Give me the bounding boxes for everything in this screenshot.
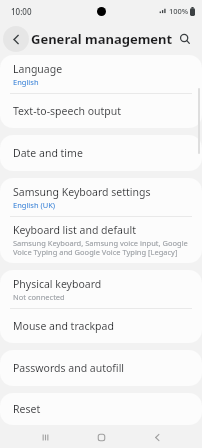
button[interactable]: Home: [90, 426, 112, 448]
button[interactable]: Recent apps: [34, 426, 56, 448]
staticText: Keyboard list and default: [13, 223, 136, 237]
staticText: English: [13, 77, 39, 87]
staticText: Physical keyboard: [13, 277, 102, 291]
button[interactable]: Language: [0, 55, 202, 93]
staticText: 10:00: [11, 6, 32, 17]
staticText: General management: [31, 30, 173, 48]
button[interactable]: Search: [172, 26, 198, 52]
staticText: Text-to-speech output: [13, 104, 122, 118]
button[interactable]: Text-to-speech output: [0, 94, 202, 128]
button[interactable]: Mouse and trackpad: [0, 309, 202, 343]
staticText: Samsung Keyboard settings: [13, 185, 151, 199]
button[interactable]: Keyboard list and default: [0, 217, 202, 263]
button[interactable]: Physical keyboard: [0, 270, 202, 308]
staticText: Reset: [13, 402, 41, 416]
button[interactable]: Back: [3, 26, 29, 52]
staticText: Language: [13, 62, 63, 76]
button[interactable]: Reset: [0, 393, 202, 425]
staticText: Passwords and autofill: [13, 361, 125, 375]
button[interactable]: Back: [146, 426, 168, 448]
staticText: Samsung Keyboard, Samsung voice input, G…: [13, 238, 191, 258]
button[interactable]: Date and time: [0, 135, 202, 171]
staticText: Not connected: [13, 292, 65, 302]
staticText: 100%: [169, 6, 189, 16]
button[interactable]: Passwords and autofill: [0, 350, 202, 386]
staticText: Date and time: [13, 146, 83, 160]
staticText: Mouse and trackpad: [13, 319, 114, 333]
staticText: English (UK): [13, 200, 56, 210]
button[interactable]: Samsung Keyboard settings: [0, 178, 202, 216]
